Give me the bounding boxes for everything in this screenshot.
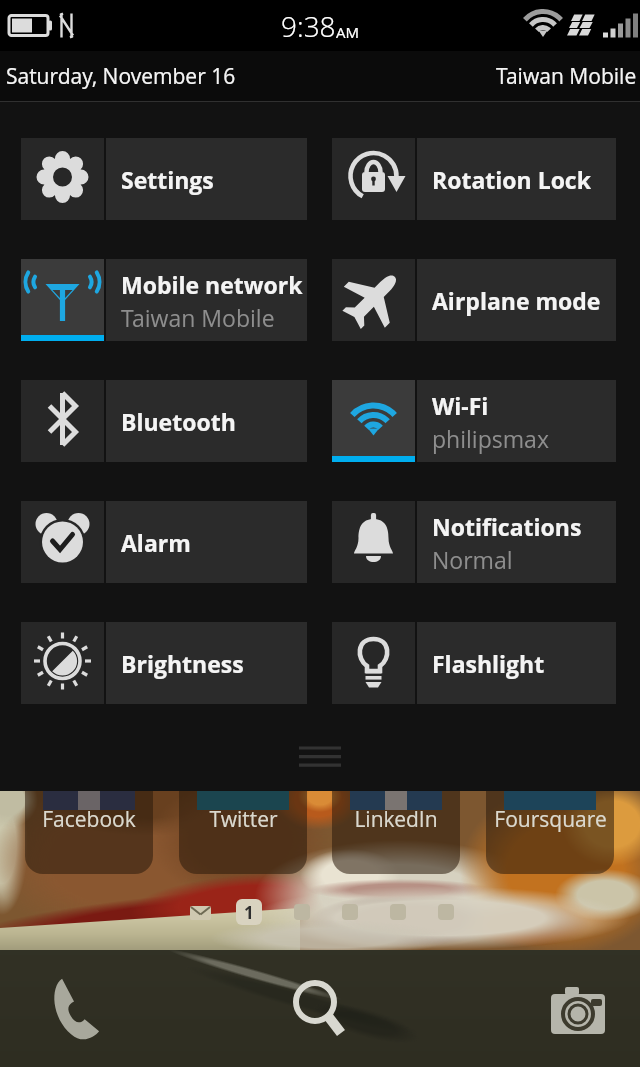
staticText: Alarm	[121, 527, 191, 558]
button[interactable]: Airplane mode	[332, 259, 616, 341]
staticText: Bluetooth	[121, 406, 236, 437]
staticText: Mobile network	[121, 269, 303, 300]
staticText: Settings	[121, 164, 214, 195]
button[interactable]: Rotation Lock	[332, 138, 616, 220]
button[interactable]: Brightness	[21, 622, 307, 704]
button[interactable]: LinkedIn	[332, 786, 460, 874]
staticText: LinkedIn	[354, 805, 438, 834]
button[interactable]: Phone	[35, 967, 119, 1051]
staticText: Flashlight	[432, 648, 545, 679]
button[interactable]: Twitter	[179, 786, 307, 874]
button[interactable]	[390, 904, 406, 920]
staticText: Twitter	[209, 805, 278, 834]
button[interactable]	[294, 904, 310, 920]
button[interactable]	[342, 904, 358, 920]
staticText: Taiwan Mobile	[121, 302, 275, 333]
staticText: Brightness	[121, 648, 244, 679]
button[interactable]: Facebook	[25, 786, 153, 874]
staticText: AM	[336, 22, 360, 42]
button[interactable]	[438, 904, 454, 920]
button[interactable]: Bluetooth	[21, 380, 307, 462]
button[interactable]: Notifications	[332, 501, 616, 583]
staticText: Facebook	[42, 805, 136, 834]
button[interactable]: Wi-Fi	[332, 380, 616, 462]
staticText: Airplane mode	[432, 285, 601, 316]
button[interactable]: Close quick settings	[0, 743, 640, 777]
staticText: philipsmax	[432, 423, 549, 454]
button[interactable]: Camera	[536, 967, 620, 1051]
button[interactable]: 1	[236, 899, 262, 925]
staticText: Rotation Lock	[432, 164, 591, 195]
staticText: Wi-Fi	[432, 390, 489, 421]
button[interactable]: Messages	[189, 899, 212, 925]
button[interactable]: Mobile network	[21, 259, 307, 341]
button[interactable]: Flashlight	[332, 622, 616, 704]
button[interactable]: Alarm	[21, 501, 307, 583]
button[interactable]: Search	[278, 967, 362, 1051]
staticText: 9:38	[281, 7, 336, 45]
staticText: Notifications	[432, 511, 582, 542]
staticText: 1	[244, 901, 254, 924]
staticText: Saturday, November 16	[6, 62, 236, 91]
button[interactable]: Foursquare	[486, 786, 614, 874]
staticText: Normal	[432, 544, 513, 575]
staticText: Taiwan Mobile	[496, 62, 637, 91]
button[interactable]: Settings	[21, 138, 307, 220]
staticText: Foursquare	[494, 805, 607, 834]
